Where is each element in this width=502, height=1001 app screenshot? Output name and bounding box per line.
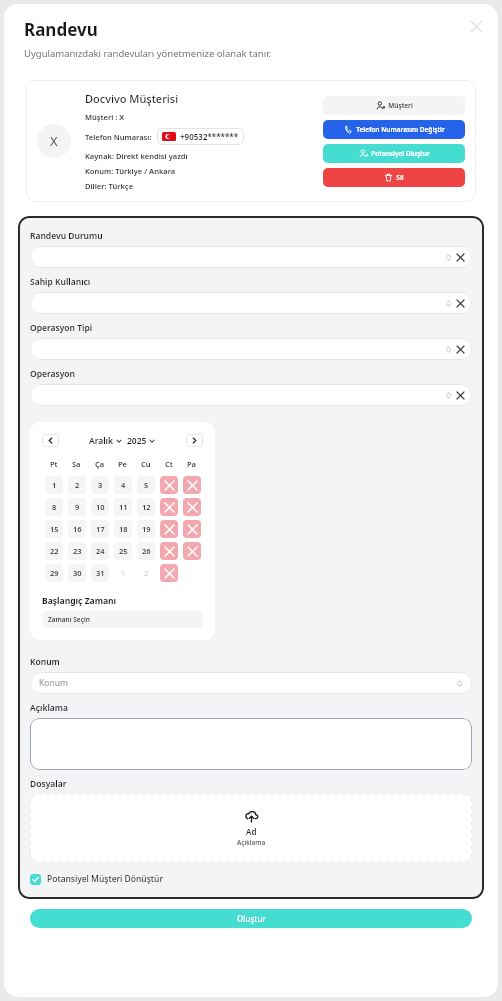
button[interactable]: 16 xyxy=(68,520,86,538)
button[interactable]: 24 xyxy=(91,542,109,560)
button[interactable]: Sil xyxy=(323,168,465,187)
button[interactable]: 26 xyxy=(137,542,155,560)
button[interactable]: Müsait değil xyxy=(160,564,178,582)
button[interactable]: Aralık xyxy=(89,435,155,447)
staticText: 30 xyxy=(73,568,82,578)
button[interactable]: 25 xyxy=(114,542,132,560)
staticText: Pa xyxy=(187,459,196,469)
button[interactable]: Müsait değil xyxy=(183,542,201,560)
staticText: Sahip Kullanıcı xyxy=(30,276,91,288)
staticText: Diller: Türkçe xyxy=(85,181,134,191)
button[interactable]: 15 xyxy=(45,520,63,538)
staticText: Uygulamanızdaki randevuları yönetmenize … xyxy=(24,47,272,60)
button[interactable]: Müsait değil xyxy=(183,520,201,538)
button[interactable]: Müsait değil xyxy=(183,476,201,494)
button[interactable]: 29 xyxy=(45,564,63,582)
button[interactable]: 1 xyxy=(114,564,132,582)
staticText: 26 xyxy=(142,546,151,556)
staticText: 8 xyxy=(52,502,57,512)
button[interactable]: 17 xyxy=(91,520,109,538)
button[interactable]: Müsait değil xyxy=(160,476,178,494)
staticText: 4 xyxy=(121,480,126,490)
button[interactable]: Müşteri xyxy=(323,96,465,115)
staticText: X xyxy=(50,132,58,150)
button[interactable]: Sonraki ay xyxy=(186,434,203,447)
staticText: Pt xyxy=(50,459,58,469)
staticText: 24 xyxy=(96,546,105,556)
staticText: 1 xyxy=(52,480,57,490)
button[interactable]: Müsait değil xyxy=(160,542,178,560)
staticText: 11 xyxy=(119,502,128,512)
button[interactable]: 2 xyxy=(68,476,86,494)
button[interactable]: 8 xyxy=(45,498,63,516)
button[interactable] xyxy=(30,246,472,268)
staticText: Ct xyxy=(165,459,173,469)
staticText: Müşteri : X xyxy=(85,112,125,122)
button[interactable]: Potansiyel Oluştur xyxy=(323,144,465,163)
staticText: 16 xyxy=(73,524,82,534)
staticText: Telefon Numarasını Değiştir xyxy=(356,125,445,134)
staticText: Konum xyxy=(39,677,68,689)
button[interactable] xyxy=(30,292,472,314)
button[interactable]: Konum xyxy=(30,672,472,694)
staticText: 23 xyxy=(73,546,82,556)
button[interactable]: Müsait değil xyxy=(160,520,178,538)
staticText: Aralık xyxy=(89,435,114,447)
button[interactable] xyxy=(30,718,472,770)
button[interactable]: Zamanı Seçin xyxy=(42,611,203,628)
button[interactable]: 3 xyxy=(91,476,109,494)
staticText: 10 xyxy=(96,502,105,512)
staticText: 22 xyxy=(50,546,59,556)
button[interactable]: 11 xyxy=(114,498,132,516)
staticText: Ad xyxy=(246,826,257,837)
button[interactable]: 22 xyxy=(45,542,63,560)
staticText: 5 xyxy=(144,480,149,490)
button[interactable]: 5 xyxy=(137,476,155,494)
staticText: 12 xyxy=(142,502,151,512)
button[interactable]: 18 xyxy=(114,520,132,538)
staticText: 29 xyxy=(50,568,59,578)
staticText: Ça xyxy=(95,459,105,469)
staticText: Randevu xyxy=(24,18,98,41)
staticText: Cu xyxy=(141,459,151,469)
button[interactable]: 12 xyxy=(137,498,155,516)
staticText: +90532******* xyxy=(180,131,239,142)
staticText: Randevu Durumu xyxy=(30,230,103,242)
staticText: 9 xyxy=(75,502,80,512)
staticText: Zamanı Seçin xyxy=(48,615,90,624)
button[interactable]: 2 xyxy=(137,564,155,582)
staticText: Açıklama xyxy=(30,702,68,714)
staticText: Kaynak: Direkt kendisi yazdı xyxy=(85,151,188,161)
staticText: 31 xyxy=(96,568,105,578)
button[interactable]: 19 xyxy=(137,520,155,538)
staticText: 15 xyxy=(50,524,59,534)
staticText: 19 xyxy=(142,524,151,534)
button[interactable]: 31 xyxy=(91,564,109,582)
staticText: Konum: Türkiye / Ankara xyxy=(85,166,176,176)
button[interactable]: 30 xyxy=(68,564,86,582)
button[interactable]: Oluştur xyxy=(30,909,472,928)
staticText: Açıklama xyxy=(237,838,266,847)
button[interactable]: 1 xyxy=(45,476,63,494)
button[interactable]: Telefon Numarasını Değiştir xyxy=(323,120,465,139)
button[interactable]: Önceki ay xyxy=(42,434,59,447)
button[interactable]: Ad xyxy=(30,794,472,862)
button[interactable]: 23 xyxy=(68,542,86,560)
staticText: Sa xyxy=(72,459,81,469)
button[interactable] xyxy=(30,384,472,406)
staticText: Konum xyxy=(30,656,60,668)
button[interactable]: 4 xyxy=(114,476,132,494)
button[interactable]: Kapat xyxy=(462,12,490,40)
button[interactable]: Müsait değil xyxy=(160,498,178,516)
staticText: Potansiyel Oluştur xyxy=(371,149,430,158)
button[interactable]: 10 xyxy=(91,498,109,516)
staticText: 2 xyxy=(144,568,149,578)
staticText: Pe xyxy=(118,459,127,469)
staticText: 2025 xyxy=(127,435,147,447)
button[interactable] xyxy=(30,338,472,360)
button[interactable]: 9 xyxy=(68,498,86,516)
staticText: Operasyon xyxy=(30,368,75,380)
staticText: Müşteri xyxy=(388,101,413,110)
button[interactable]: Müsait değil xyxy=(183,498,201,516)
button[interactable]: Potansiyel Müşteri Dönüştür xyxy=(30,873,164,885)
